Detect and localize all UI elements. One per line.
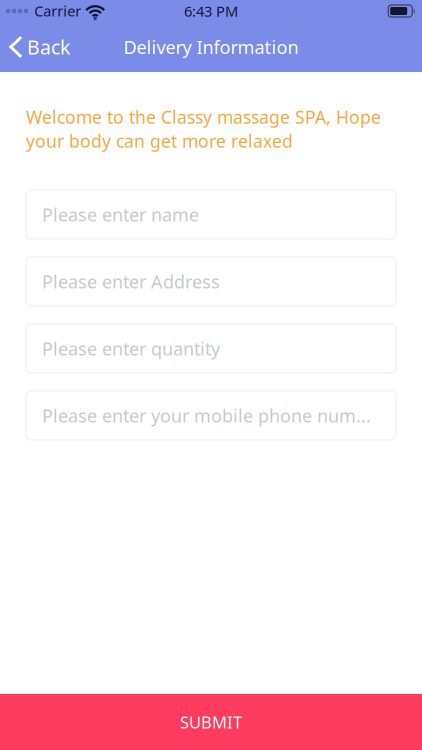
button[interactable]: SUBMIT	[0, 694, 422, 750]
staticText: Back	[27, 34, 70, 60]
staticText: Welcome to the Classy massage SPA, Hope …	[26, 105, 381, 153]
staticText: Please enter Address	[42, 269, 220, 294]
button[interactable]: Please enter your mobile phone num...	[26, 391, 396, 440]
staticText: Carrier	[34, 1, 81, 21]
staticText: Please enter your mobile phone num...	[42, 403, 371, 428]
button[interactable]: Please enter quantity	[26, 324, 396, 373]
button[interactable]: Please enter Address	[26, 257, 396, 306]
staticText: Delivery Information	[123, 35, 298, 59]
staticText: 6:43 PM	[184, 1, 238, 21]
button[interactable]: Please enter name	[26, 190, 396, 239]
staticText: SUBMIT	[180, 711, 242, 733]
staticText: Please enter quantity	[42, 336, 220, 361]
staticText: Please enter name	[42, 202, 199, 227]
button[interactable]: Back	[0, 28, 80, 66]
